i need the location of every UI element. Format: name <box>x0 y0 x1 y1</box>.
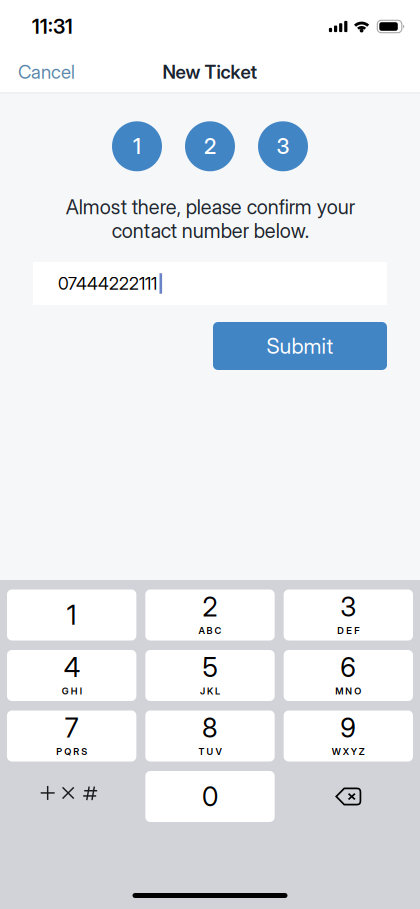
staticText: 7 <box>65 712 79 743</box>
staticText: Submit <box>266 333 333 359</box>
staticText: 3 <box>276 134 289 159</box>
staticText: New Ticket <box>162 61 257 83</box>
staticText: 07444222111 <box>58 273 157 294</box>
staticText: W X Y Z <box>332 746 365 757</box>
staticText: 3 <box>340 591 356 622</box>
button[interactable]: 8 <box>145 710 275 761</box>
staticText: P Q R S <box>56 746 87 757</box>
button[interactable]: Cancel <box>0 53 93 91</box>
button[interactable]: 4 <box>7 650 136 701</box>
staticText: G H I <box>62 685 82 696</box>
button[interactable]: 5 <box>145 650 275 701</box>
button[interactable]: 1 <box>7 589 136 640</box>
staticText: D E F <box>337 625 359 636</box>
staticText: 2 <box>202 591 217 622</box>
button[interactable]: 6 <box>284 650 413 701</box>
button[interactable]: 7 <box>7 710 136 761</box>
staticText: 0 <box>202 781 218 812</box>
button[interactable]: 0 <box>145 771 275 822</box>
staticText: 9 <box>340 712 356 743</box>
button[interactable]: Delete <box>284 771 413 822</box>
staticText: M N O <box>335 685 361 696</box>
staticText: 2 <box>204 134 216 159</box>
staticText: 1 <box>133 134 141 159</box>
staticText: 6 <box>340 651 356 683</box>
staticText: 11:31 <box>32 15 73 38</box>
staticText: 4 <box>64 651 80 683</box>
staticText: Almost there, please confirm your contac… <box>65 195 354 242</box>
button[interactable]: Symbols <box>7 771 136 822</box>
staticText: 8 <box>202 712 218 743</box>
staticText: Cancel <box>18 61 75 83</box>
staticText: T U V <box>198 746 221 757</box>
button[interactable]: 9 <box>284 710 413 761</box>
staticText: A B C <box>198 625 221 636</box>
button[interactable]: 2 <box>145 589 275 640</box>
button[interactable]: 3 <box>284 589 413 640</box>
staticText: J K L <box>200 685 220 696</box>
button[interactable]: Submit <box>213 322 387 370</box>
staticText: 1 <box>67 599 77 631</box>
staticText: 5 <box>202 651 217 683</box>
